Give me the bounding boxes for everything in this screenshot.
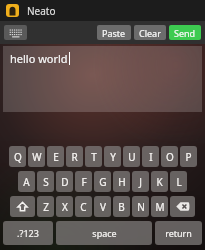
button[interactable]: I: [142, 146, 159, 167]
button[interactable]: Clear: [134, 25, 166, 40]
staticText: L: [176, 175, 182, 189]
staticText: D: [61, 175, 69, 189]
button[interactable]: space: [56, 221, 152, 245]
staticText: N: [137, 200, 145, 214]
button[interactable]: V: [94, 196, 111, 217]
button[interactable]: N: [132, 196, 149, 217]
button[interactable]: M: [151, 196, 168, 217]
button[interactable]: B: [113, 196, 130, 217]
button[interactable]: P: [180, 146, 197, 167]
button[interactable]: T: [85, 146, 102, 167]
staticText: A: [23, 175, 30, 189]
staticText: X: [62, 200, 68, 214]
button[interactable]: Send: [169, 25, 201, 40]
staticText: return: [165, 227, 192, 239]
staticText: M: [155, 200, 165, 214]
staticText: Q: [14, 150, 22, 164]
staticText: H: [118, 175, 126, 189]
staticText: F: [81, 175, 87, 189]
button[interactable]: W: [28, 146, 45, 167]
staticText: K: [156, 175, 163, 189]
staticText: hello world: [10, 51, 68, 66]
button[interactable]: H: [113, 171, 130, 192]
button[interactable]: J: [132, 171, 149, 192]
button[interactable]: D: [56, 171, 73, 192]
button[interactable]: Y: [104, 146, 121, 167]
button[interactable]: S: [37, 171, 54, 192]
button[interactable]: .?123: [3, 221, 53, 245]
staticText: I: [149, 150, 153, 164]
button[interactable]: O: [161, 146, 178, 167]
staticText: Paste: [102, 27, 126, 39]
button[interactable]: U: [123, 146, 140, 167]
staticText: Z: [43, 200, 49, 214]
button[interactable]: Paste: [97, 25, 131, 40]
staticText: Neato: [27, 4, 56, 18]
button[interactable]: R: [66, 146, 83, 167]
button[interactable]: L: [170, 171, 187, 192]
staticText: T: [91, 150, 97, 164]
button[interactable]: G: [94, 171, 111, 192]
staticText: U: [128, 150, 136, 164]
staticText: C: [80, 200, 87, 214]
staticText: space: [92, 227, 117, 239]
staticText: .?123: [17, 227, 39, 239]
button[interactable]: X: [56, 196, 73, 217]
staticText: R: [71, 150, 78, 164]
staticText: P: [185, 150, 192, 164]
button[interactable]: Shift: [10, 196, 35, 217]
button[interactable]: E: [47, 146, 64, 167]
staticText: Y: [110, 150, 116, 164]
button[interactable]: K: [151, 171, 168, 192]
button[interactable]: Keyboard: [4, 25, 27, 40]
staticText: S: [43, 175, 49, 189]
staticText: J: [139, 175, 142, 189]
staticText: Clear: [139, 27, 161, 39]
staticText: G: [99, 175, 107, 189]
staticText: V: [100, 200, 106, 214]
button[interactable]: Backspace: [170, 196, 195, 217]
staticText: E: [53, 150, 59, 164]
button[interactable]: Z: [37, 196, 54, 217]
staticText: B: [118, 200, 125, 214]
button[interactable]: A: [18, 171, 35, 192]
staticText: O: [166, 150, 174, 164]
button[interactable]: C: [75, 196, 92, 217]
button[interactable]: hello world: [3, 46, 202, 112]
staticText: Send: [174, 27, 196, 39]
button[interactable]: F: [75, 171, 92, 192]
button[interactable]: Q: [9, 146, 26, 167]
staticText: W: [32, 150, 42, 164]
button[interactable]: return: [155, 221, 202, 245]
